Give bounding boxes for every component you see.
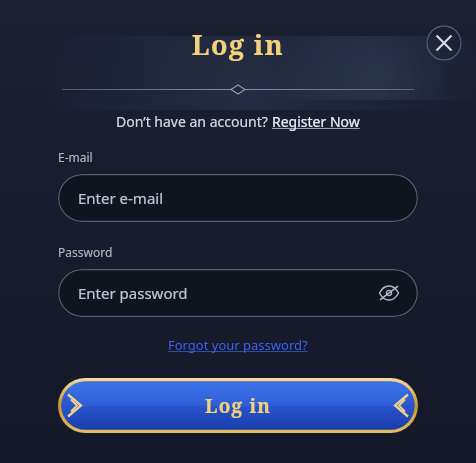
button[interactable]: Forgot your password?	[168, 336, 308, 354]
staticText: Log in	[0, 26, 476, 63]
staticText: Log in	[205, 393, 272, 419]
button[interactable]: Show password	[376, 280, 402, 306]
staticText: Forgot your password?	[168, 336, 308, 354]
button[interactable]: Register Now	[272, 112, 360, 131]
staticText: Enter e-mail	[78, 188, 164, 208]
button[interactable]: Close	[426, 25, 462, 61]
staticText: E-mail	[58, 149, 93, 165]
staticText: Don’t have an account?	[116, 112, 272, 131]
button[interactable]: Log in	[58, 378, 418, 433]
button[interactable]: Enter e-mail	[58, 174, 418, 222]
staticText: Enter password	[78, 283, 188, 303]
staticText: Register Now	[272, 112, 360, 131]
button[interactable]: Enter password	[58, 269, 418, 317]
staticText: Password	[58, 244, 113, 260]
